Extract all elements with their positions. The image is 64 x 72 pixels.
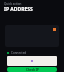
button[interactable]: Check IP <box>7 67 57 72</box>
staticText: Quick action <box>4 2 22 6</box>
staticText: Check IP <box>26 68 39 72</box>
button[interactable] <box>5 25 59 47</box>
staticText: IP ADDRESS <box>4 6 33 13</box>
staticText: Connected <box>11 51 27 55</box>
